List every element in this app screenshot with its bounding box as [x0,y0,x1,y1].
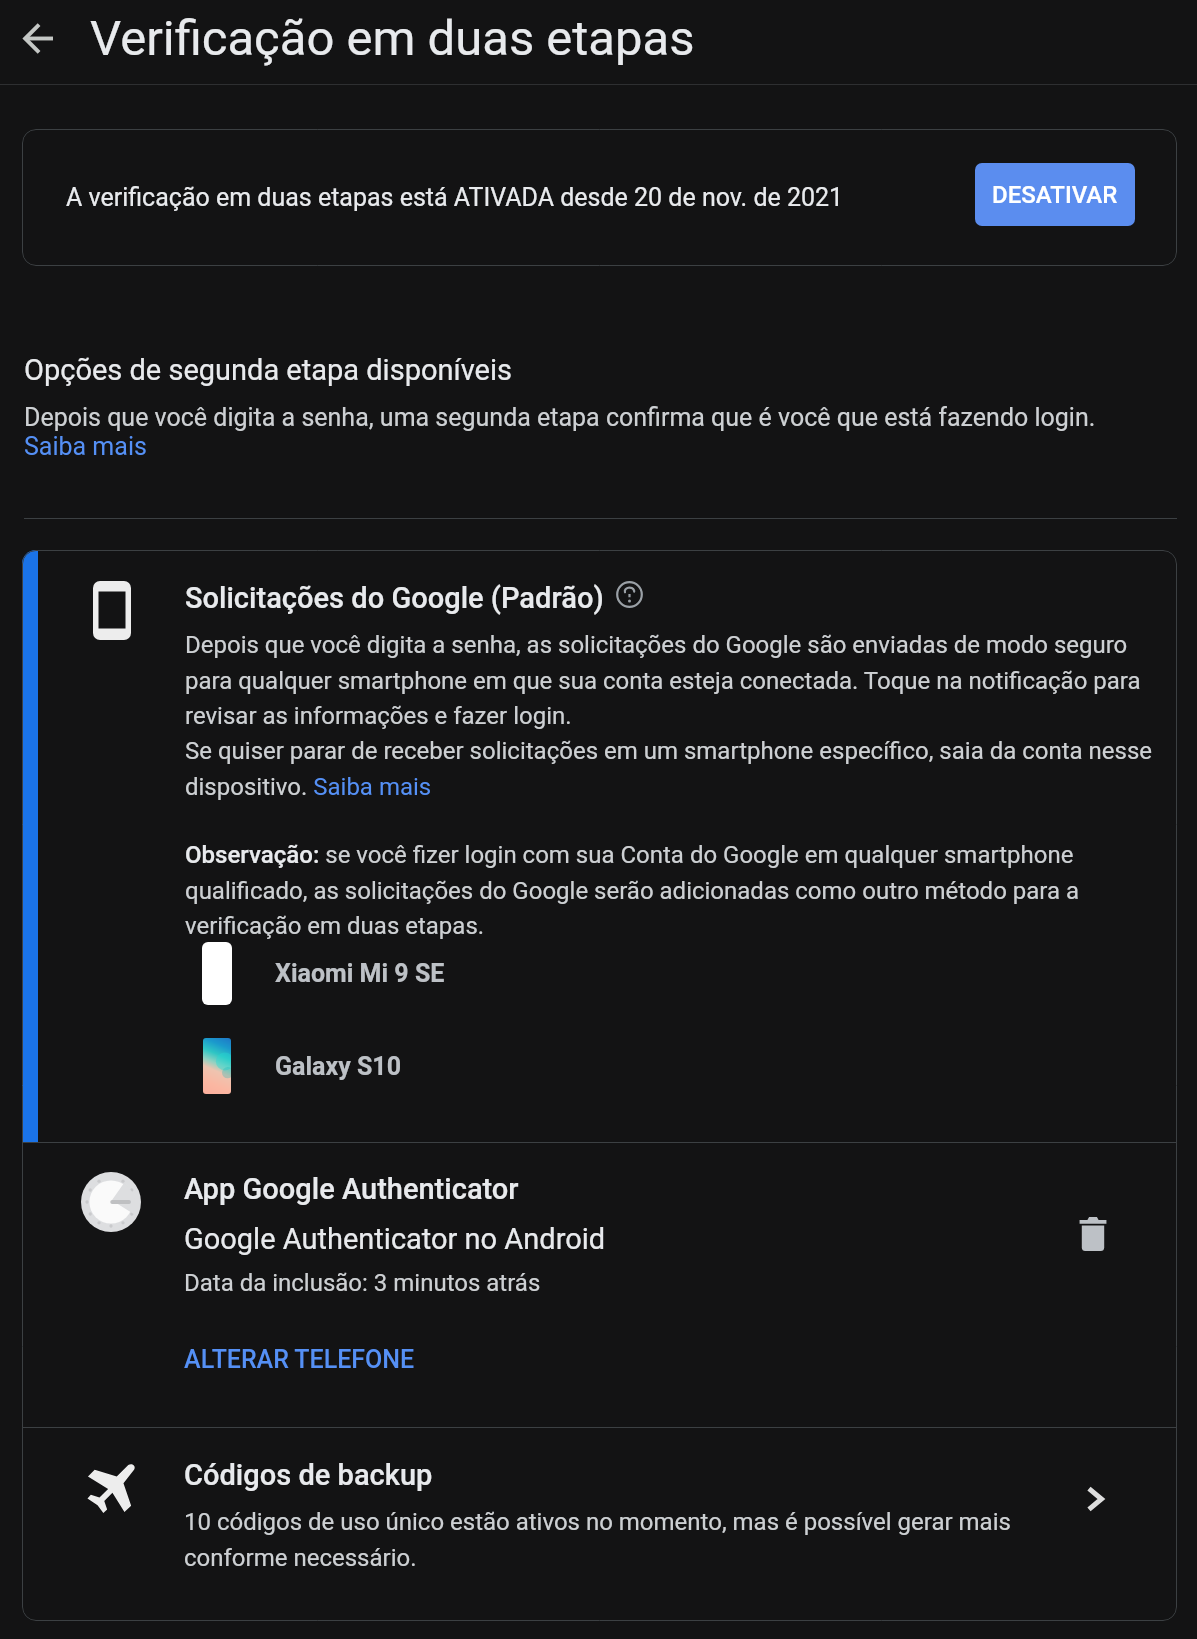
staticText: Saiba mais [24,432,147,461]
staticText: Observação: se você fizer login com sua … [185,841,1170,940]
button[interactable]: App Google Authenticator [22,1143,1177,1427]
staticText: Depois que você digita a senha, as solic… [185,631,1170,730]
button[interactable]: Saiba mais [24,432,147,461]
staticText: Galaxy S10 [275,1052,402,1081]
staticText: ALTERAR TELEFONE [184,1345,415,1374]
staticText: App Google Authenticator [184,1172,519,1206]
staticText: Códigos de backup [184,1458,433,1492]
button[interactable]: Abrir códigos de backup [1073,1476,1119,1522]
staticText: Opções de segunda etapa disponíveis [24,353,512,387]
staticText: Data da inclusão: 3 minutos atrás [184,1269,541,1297]
staticText: 10 códigos de uso único estão ativos no … [184,1508,1073,1572]
button[interactable]: Remover [1070,1211,1116,1257]
button[interactable]: Back [10,10,66,66]
button[interactable]: DESATIVAR [975,163,1135,226]
staticText: Google Authenticator no Android [184,1222,606,1256]
button[interactable]: Ajuda [616,581,643,608]
button[interactable]: Solicitações do Google (Padrão) [22,550,1177,1142]
staticText: Depois que você digita a senha, uma segu… [24,403,1096,432]
staticText: Se quiser parar de receber solicitações … [185,737,1170,801]
staticText: DESATIVAR [992,181,1118,209]
button[interactable]: Códigos de backup [22,1428,1177,1621]
staticText: A verificação em duas etapas está ATIVAD… [66,183,975,212]
button[interactable]: ALTERAR TELEFONE [184,1345,415,1374]
staticText: Xiaomi Mi 9 SE [275,959,445,988]
staticText: Solicitações do Google (Padrão) [185,581,604,615]
staticText: Verificação em duas etapas [90,10,695,67]
